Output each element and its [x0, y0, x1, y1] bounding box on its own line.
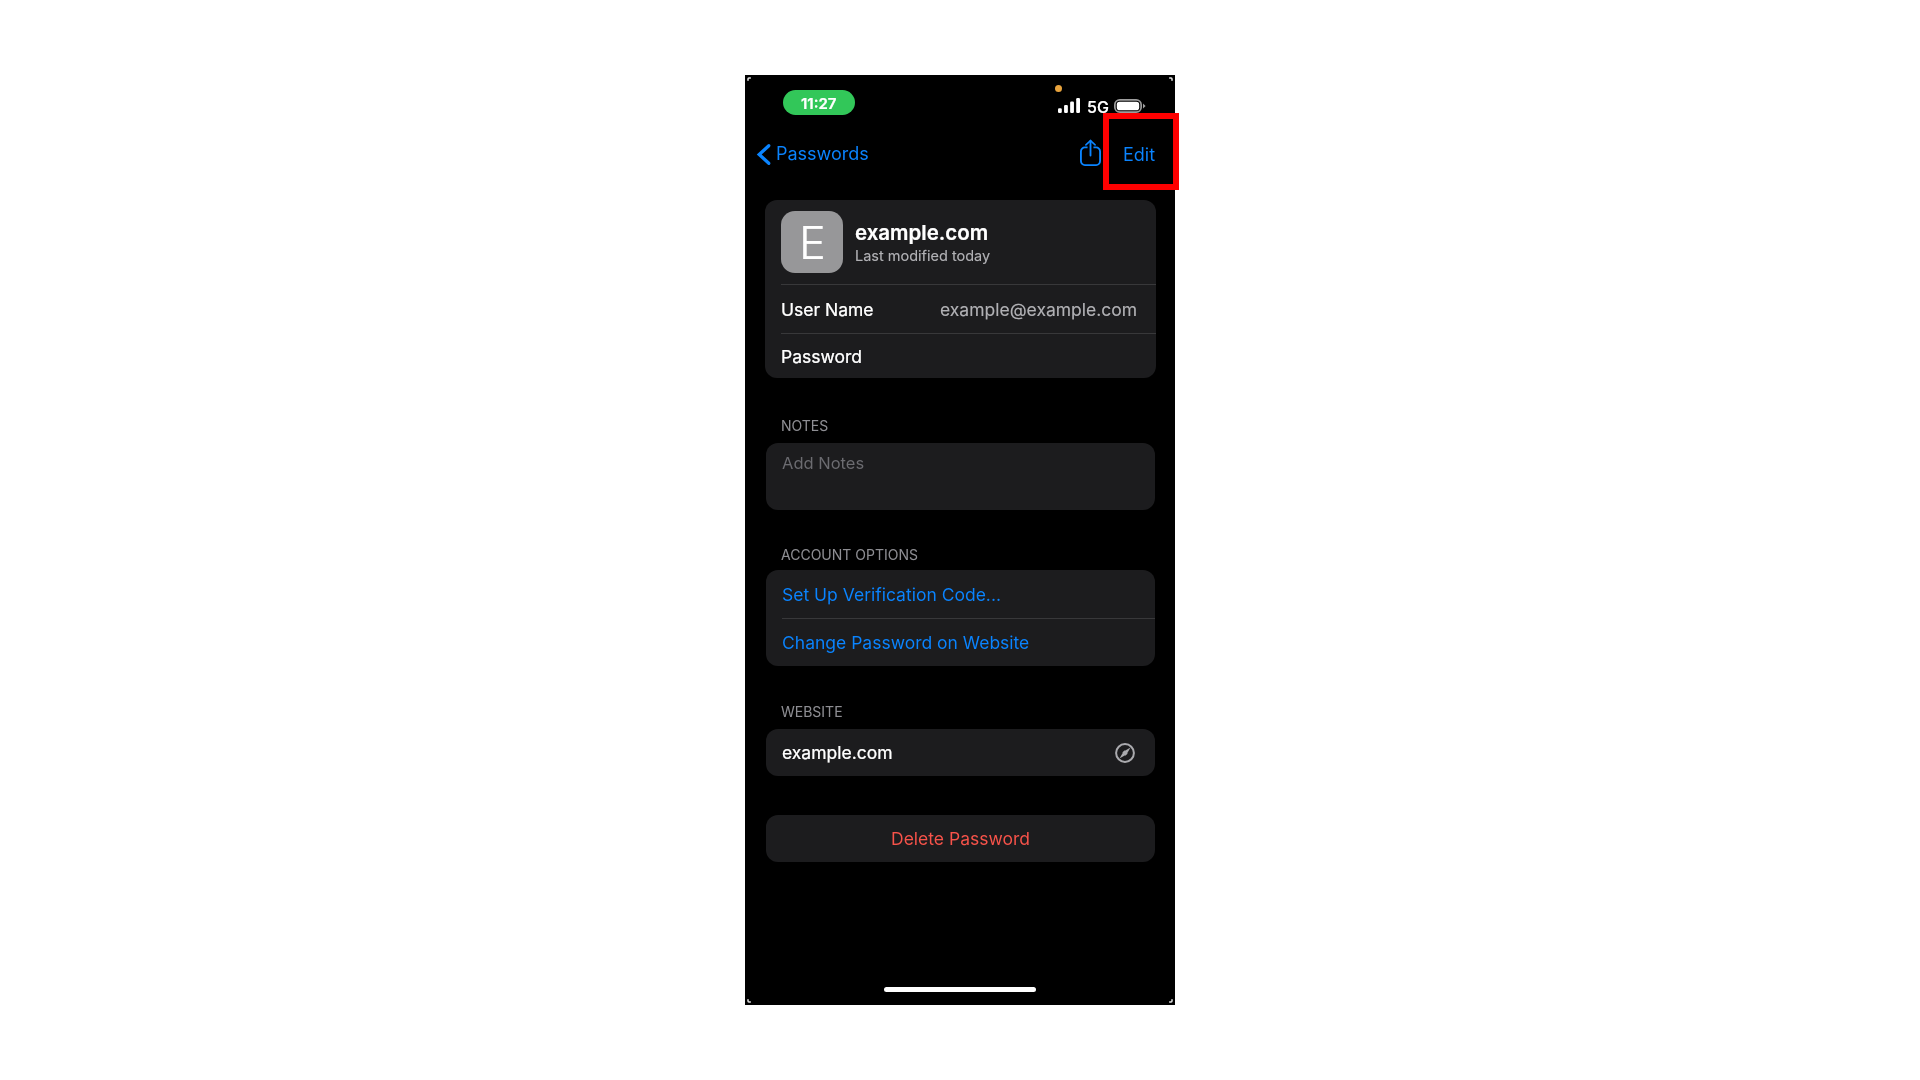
button[interactable]: Set Up Verification Code...: [766, 570, 1155, 618]
button[interactable]: Add Notes: [766, 443, 1155, 510]
staticText: Password: [781, 346, 862, 367]
staticText: Set Up Verification Code...: [782, 584, 1001, 605]
staticText: WEBSITE: [781, 703, 843, 720]
staticText: E: [799, 215, 826, 269]
button[interactable]: Passwords: [751, 138, 877, 170]
button[interactable]: Edit: [1114, 137, 1165, 172]
button[interactable]: E: [765, 200, 1156, 284]
button[interactable]: example.com: [766, 729, 1155, 776]
button[interactable]: Password: [765, 334, 1156, 378]
staticText: Passwords: [776, 143, 869, 165]
staticText: Change Password on Website: [782, 632, 1030, 653]
staticText: NOTES: [781, 417, 829, 434]
button[interactable]: User Name: [765, 285, 1156, 333]
button[interactable]: Share: [1071, 132, 1109, 174]
button[interactable]: Change Password on Website: [766, 619, 1155, 666]
staticText: User Name: [781, 299, 874, 320]
staticText: Last modified today: [855, 247, 991, 265]
staticText: example.com: [782, 742, 893, 763]
staticText: example@example.com: [940, 299, 1138, 320]
button[interactable]: Delete Password: [766, 815, 1155, 862]
staticText: ACCOUNT OPTIONS: [781, 546, 918, 563]
staticText: Add Notes: [782, 453, 865, 473]
staticText: Delete Password: [891, 828, 1030, 849]
staticText: Edit: [1123, 144, 1156, 166]
staticText: example.com: [855, 220, 989, 245]
staticText: 11:27: [801, 94, 837, 112]
staticText: 5G: [1087, 97, 1109, 116]
